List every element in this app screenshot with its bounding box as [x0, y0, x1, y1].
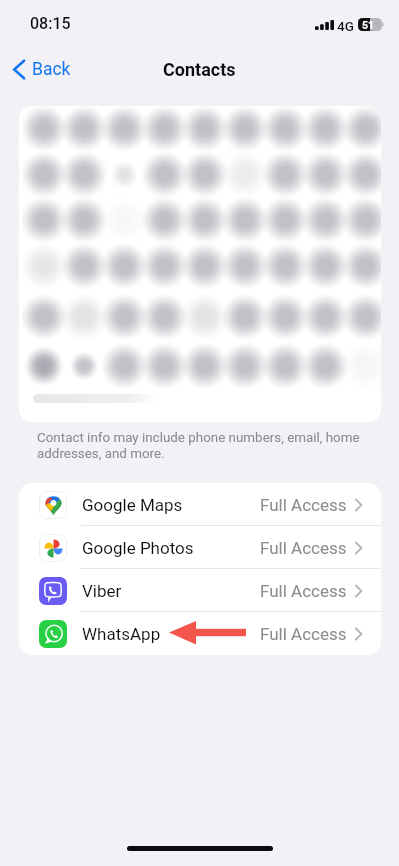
staticText: Contact info may include phone numbers, … — [37, 430, 360, 446]
button[interactable]: Google Photos — [19, 526, 381, 569]
staticText: Full Access — [260, 495, 347, 515]
staticText: 4G — [337, 18, 354, 34]
staticText: 08:15 — [30, 14, 71, 33]
staticText: Back — [32, 59, 71, 80]
button[interactable]: WhatsApp — [19, 612, 381, 655]
staticText: Contacts — [163, 59, 236, 80]
staticText: Full Access — [260, 538, 347, 558]
button[interactable]: Back — [8, 55, 76, 84]
staticText: Google Maps — [82, 495, 183, 515]
staticText: Full Access — [260, 581, 347, 601]
staticText: WhatsApp — [82, 624, 161, 644]
staticText: addresses, and more. — [37, 446, 165, 462]
staticText: Viber — [82, 581, 122, 601]
button[interactable]: Viber — [19, 569, 381, 612]
button[interactable]: Google Maps — [19, 483, 381, 526]
staticText: Google Photos — [82, 538, 194, 558]
staticText: 51 — [362, 19, 375, 31]
staticText: Full Access — [260, 624, 347, 644]
